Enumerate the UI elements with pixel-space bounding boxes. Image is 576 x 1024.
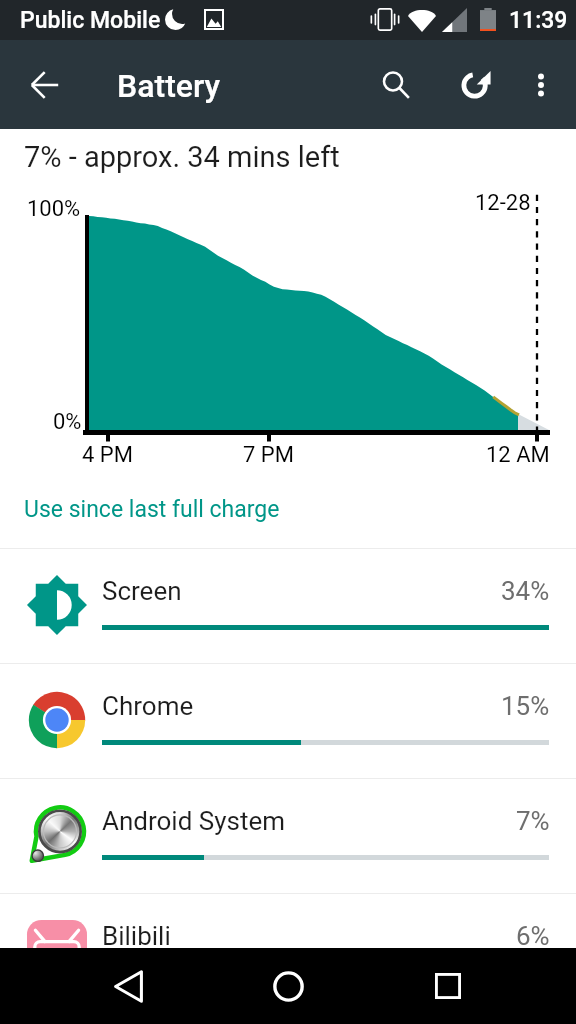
button[interactable]: Search [367,56,425,114]
button[interactable]: Back [90,948,166,1024]
staticText: 7% [516,806,550,836]
staticText: 0% [53,409,82,435]
staticText: 12 AM [486,442,550,468]
staticText: 4 PM [82,442,133,468]
staticText: 100% [27,196,81,222]
button[interactable]: Navigate up [16,56,74,114]
staticText: 7% - approx. 34 mins left [24,140,340,174]
staticText: Public Mobile [20,7,161,34]
button[interactable]: Chrome [0,664,576,778]
staticText: 34% [501,576,550,606]
staticText: 6% [516,921,550,951]
staticText: Battery [117,67,221,105]
button[interactable]: More options [512,56,570,114]
staticText: 15% [501,691,550,721]
staticText: Android System [102,806,286,836]
staticText: Bilibili [102,921,171,951]
staticText: Screen [102,576,182,606]
staticText: 7 PM [243,442,294,468]
button[interactable]: Screen [0,549,576,663]
button[interactable]: Android System [0,779,576,893]
button[interactable]: Recent apps [410,948,486,1024]
staticText: 11:39 [509,7,568,34]
staticText: Use since last full charge [24,496,280,523]
button[interactable]: Refresh [446,56,504,114]
button[interactable]: Bilibili [0,894,576,1008]
staticText: 12-28 [475,190,531,216]
button[interactable]: Home [250,948,326,1024]
button[interactable]: Use since last full charge [24,496,280,523]
staticText: Chrome [102,691,194,721]
